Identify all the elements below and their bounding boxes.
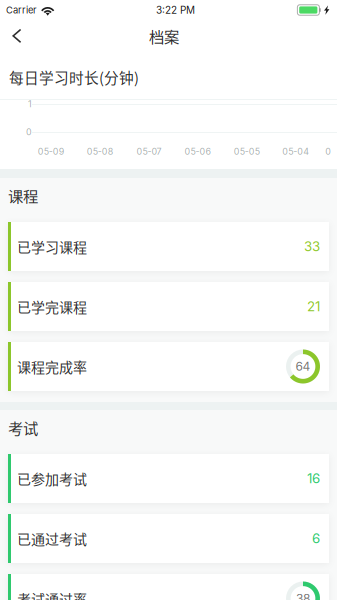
- staticText: 课程: [8, 184, 38, 207]
- staticText: 05-05: [234, 146, 260, 157]
- staticText: 05-09: [38, 146, 65, 157]
- staticText: 已参加考试: [17, 468, 87, 489]
- staticText: 0: [325, 146, 331, 157]
- staticText: 05-06: [184, 146, 211, 157]
- staticText: 05-07: [136, 146, 161, 157]
- staticText: 0: [26, 127, 32, 137]
- staticText: 3:22 PM: [156, 4, 195, 16]
- staticText: 课程完成率: [17, 356, 87, 377]
- button[interactable]: 已学习课程: [8, 222, 329, 271]
- staticText: 64: [295, 359, 310, 374]
- staticText: 已通过考试: [17, 528, 87, 549]
- staticText: 6: [312, 530, 320, 546]
- staticText: 21: [307, 298, 320, 314]
- button[interactable]: 已学完课程: [8, 282, 329, 331]
- button[interactable]: 返回: [0, 20, 38, 51]
- staticText: 已学习课程: [17, 236, 87, 257]
- button[interactable]: 课程完成率: [8, 342, 329, 391]
- staticText: 05-04: [282, 146, 309, 157]
- staticText: 已学完课程: [17, 296, 87, 317]
- staticText: 38: [296, 591, 310, 600]
- staticText: 33: [304, 238, 320, 254]
- button[interactable]: 已参加考试: [8, 454, 329, 503]
- staticText: 16: [307, 470, 320, 486]
- staticText: 考试通过率: [17, 588, 87, 600]
- staticText: 1: [28, 99, 32, 109]
- staticText: 考试: [8, 416, 38, 439]
- staticText: 档案: [149, 25, 179, 47]
- button[interactable]: 已通过考试: [8, 514, 329, 563]
- staticText: Carrier: [6, 4, 37, 16]
- staticText: 每日学习时长(分钟): [9, 66, 139, 88]
- staticText: 05-08: [87, 146, 114, 157]
- button[interactable]: 考试通过率: [8, 574, 329, 600]
